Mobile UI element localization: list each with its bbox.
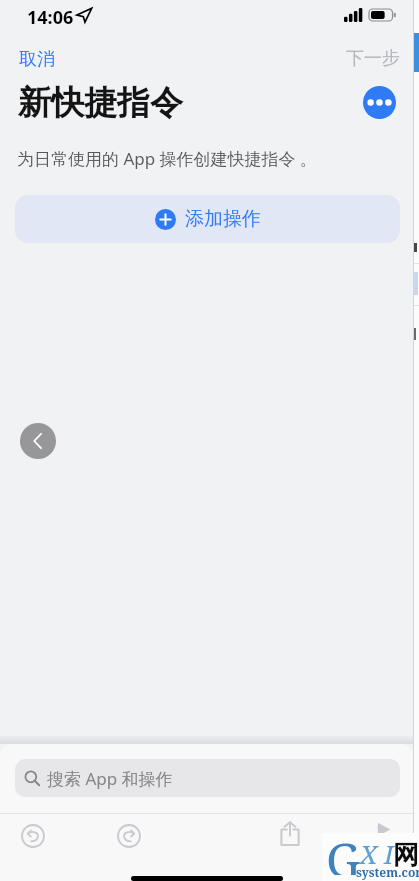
staticText: 下一步 [346, 47, 400, 70]
button[interactable]: More options [363, 86, 396, 119]
button[interactable]: 搜索 App 和操作 [15, 759, 400, 797]
staticText: 搜索 App 和操作 [47, 767, 173, 790]
button[interactable]: Undo [21, 824, 45, 848]
button[interactable]: Play [374, 820, 393, 839]
button[interactable]: Back [20, 423, 56, 459]
button[interactable]: 下一步 [334, 47, 419, 76]
staticText: 取消 [19, 48, 55, 71]
button[interactable]: 取消 [19, 48, 67, 77]
staticText: 14:06 [27, 5, 74, 30]
staticText: 新快捷指令 [18, 82, 183, 124]
staticText: 添加操作 [185, 207, 261, 231]
staticText: X I [360, 836, 394, 871]
staticText: 网 [393, 839, 419, 872]
staticText: G [326, 827, 361, 875]
button[interactable]: Redo [117, 824, 141, 848]
staticText: 为日常使用的 App 操作创建快捷指令 。 [17, 147, 318, 170]
staticText: system.com [356, 864, 419, 880]
button[interactable]: Share [280, 821, 300, 846]
button[interactable]: 添加操作 [15, 195, 400, 243]
